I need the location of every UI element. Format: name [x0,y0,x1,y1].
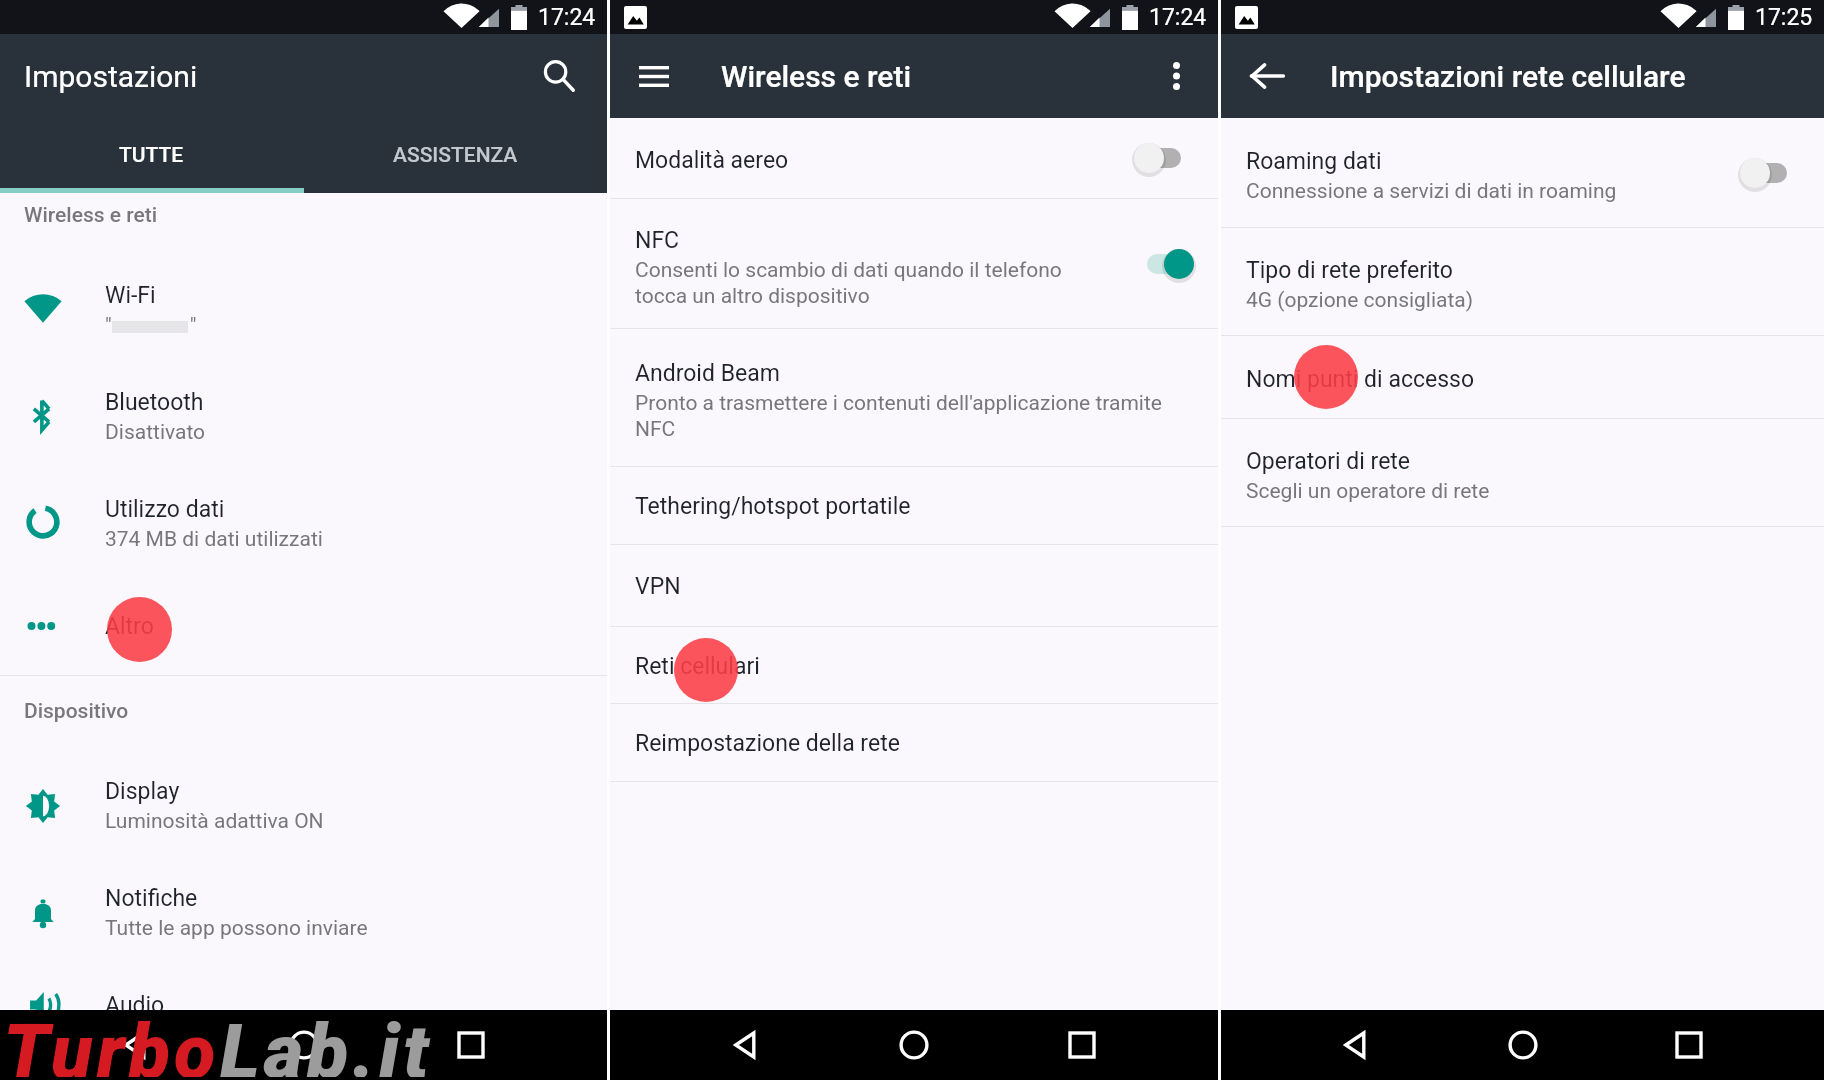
staticText: " " [105,313,197,338]
button[interactable]: Audio [0,966,607,1010]
button[interactable]: More options [1148,48,1204,104]
staticText: Display [105,778,180,805]
staticText: Tutte le app possono inviare [105,916,368,941]
button[interactable]: Android Beam [610,329,1218,466]
staticText: Android Beam [635,360,780,387]
staticText: 4G (opzione consigliata) [1246,288,1474,313]
button[interactable]: Nomi punti di accesso [1221,336,1824,418]
staticText: Operatori di rete [1246,448,1411,475]
staticText: VPN [635,573,681,600]
staticText: Lab.it [220,1007,433,1077]
button[interactable]: Bluetooth [0,361,607,468]
staticText: Altro [105,613,154,640]
button[interactable]: Tipo di rete preferito [1221,228,1824,335]
button[interactable]: Back [1324,1013,1388,1077]
button[interactable]: Toggle [1130,134,1194,182]
staticText: Wireless e reti [721,59,912,94]
button[interactable]: Home [272,1013,336,1077]
staticText: Reti cellulari [635,653,760,680]
staticText: Disattivato [105,420,206,445]
button[interactable]: Operatori di rete [1221,419,1824,526]
button[interactable]: Utilizzo dati [0,468,607,575]
staticText: 17:24 [538,4,596,31]
button[interactable]: Tethering/hotspot portatile [610,467,1218,544]
staticText: Impostazioni [24,59,198,94]
button[interactable]: Wi-Fi [0,255,607,361]
button[interactable]: ASSISTENZA [303,118,607,193]
staticText: Notifiche [105,885,198,912]
staticText: Modalità aereo [635,147,789,174]
button[interactable]: Display [0,752,607,859]
staticText: Wireless e reti [24,203,158,228]
staticText: 17:25 [1755,4,1813,31]
staticText: ASSISTENZA [393,143,518,168]
staticText: Connessione a servizi di dati in roaming [1246,179,1617,204]
button[interactable]: Toggle [1736,149,1800,197]
staticText: Reimpostazione della rete [635,730,900,757]
staticText: Dispositivo [24,699,129,724]
button[interactable]: Recents [1657,1013,1721,1077]
staticText: NFC [635,227,680,254]
staticText: Wi-Fi [105,282,156,309]
button[interactable]: VPN [610,545,1218,626]
staticText: 374 MB di dati utilizzati [105,527,323,552]
button[interactable]: TUTTE [0,118,303,193]
staticText: Luminosità adattiva ON [105,809,324,834]
button[interactable]: NFC [610,199,1218,328]
staticText: TUTTE [119,143,184,168]
button[interactable]: Home [882,1013,946,1077]
staticText: Tipo di rete preferito [1246,257,1453,284]
button[interactable]: Recents [1050,1013,1114,1077]
staticText: Nomi punti di accesso [1246,366,1475,393]
staticText: Impostazioni rete cellulare [1330,59,1686,94]
staticText: Pronto a trasmettere i contenuti dell'ap… [635,391,1162,441]
button[interactable]: Back [104,1013,168,1077]
staticText: Audio [105,992,165,1019]
button[interactable]: Reimpostazione della rete [610,704,1218,781]
button[interactable]: Menu [626,48,682,104]
staticText: Utilizzo dati [105,496,225,523]
button[interactable]: Modalità aereo [610,118,1218,198]
staticText: Consenti lo scambio di dati quando il te… [635,258,1062,308]
button[interactable]: Recents [439,1013,503,1077]
staticText: 17:24 [1149,4,1207,31]
button[interactable]: Search [531,48,587,104]
button[interactable]: Back [1239,48,1295,104]
staticText: Roaming dati [1246,148,1382,175]
button[interactable]: Toggle [1130,240,1194,288]
button[interactable]: Reti cellulari [610,627,1218,703]
button[interactable]: Home [1491,1013,1555,1077]
button[interactable]: Roaming dati [1221,118,1824,227]
button[interactable]: Back [714,1013,778,1077]
staticText: Tethering/hotspot portatile [635,493,911,520]
staticText: Turbo [3,1007,220,1077]
button[interactable]: Altro [0,575,607,675]
staticText: Scegli un operatore di rete [1246,479,1490,504]
button[interactable]: Notifiche [0,859,607,966]
staticText: Bluetooth [105,389,204,416]
